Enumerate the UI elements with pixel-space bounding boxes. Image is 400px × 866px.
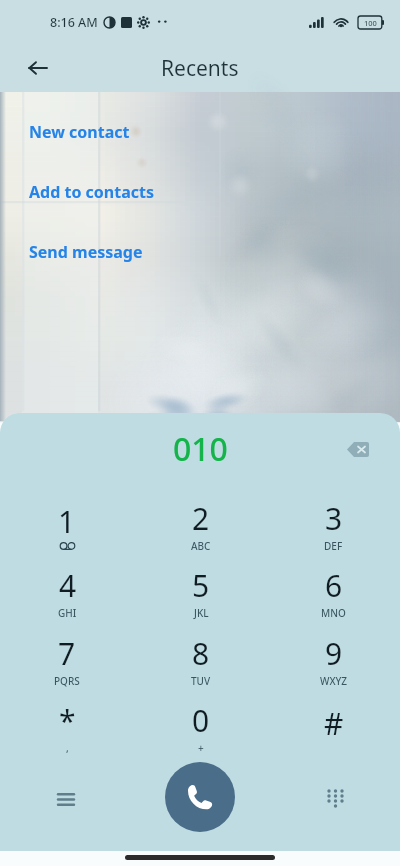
staticText: 1	[58, 501, 76, 542]
staticText: 4	[59, 565, 77, 606]
staticText: Add to contacts	[29, 181, 154, 203]
staticText: TUV	[191, 674, 211, 688]
staticText: ,	[66, 741, 69, 755]
staticText: 8	[192, 633, 210, 674]
button[interactable]: 0	[134, 694, 267, 760]
button[interactable]: Keypad	[317, 781, 353, 817]
staticText: MNO	[321, 606, 346, 620]
button[interactable]: 9	[267, 626, 400, 694]
button[interactable]: Back	[17, 48, 57, 88]
staticText: 2	[192, 498, 210, 539]
staticText: #	[324, 703, 344, 744]
staticText: 6	[325, 565, 343, 606]
button[interactable]: Add to contacts	[0, 177, 400, 207]
staticText: 7	[58, 633, 76, 674]
staticText: 8:16 AM	[50, 14, 98, 31]
button[interactable]: 2	[134, 492, 267, 559]
staticText: Send message	[29, 241, 143, 263]
button[interactable]: Call log	[48, 781, 84, 817]
button[interactable]: 1	[0, 492, 134, 559]
staticText: DEF	[324, 539, 343, 553]
staticText: Recents	[161, 54, 239, 83]
button[interactable]: 5	[134, 559, 267, 626]
staticText: 0	[192, 700, 210, 741]
staticText: +	[198, 741, 204, 755]
staticText: 5	[192, 565, 210, 606]
button[interactable]: 3	[267, 492, 400, 559]
button[interactable]: New contact	[0, 117, 400, 147]
staticText: 3	[325, 498, 343, 539]
button[interactable]: 7	[0, 626, 134, 694]
staticText: 010	[173, 427, 228, 471]
staticText: GHI	[58, 606, 77, 620]
button[interactable]: 4	[0, 559, 134, 626]
staticText: ABC	[191, 539, 211, 553]
button[interactable]: #	[267, 694, 400, 760]
button[interactable]: 6	[267, 559, 400, 626]
staticText: *	[59, 700, 76, 741]
staticText: New contact	[29, 121, 130, 143]
button[interactable]: *	[0, 694, 134, 760]
button[interactable]: 8	[134, 626, 267, 694]
staticText: 100	[364, 18, 377, 28]
button[interactable]: Send message	[0, 237, 400, 267]
button[interactable]: Call	[165, 762, 235, 832]
staticText: JKL	[194, 606, 209, 620]
staticText: 9	[325, 633, 343, 674]
staticText: PQRS	[54, 674, 80, 688]
button[interactable]: Backspace	[342, 433, 374, 465]
staticText: WXYZ	[320, 674, 348, 688]
